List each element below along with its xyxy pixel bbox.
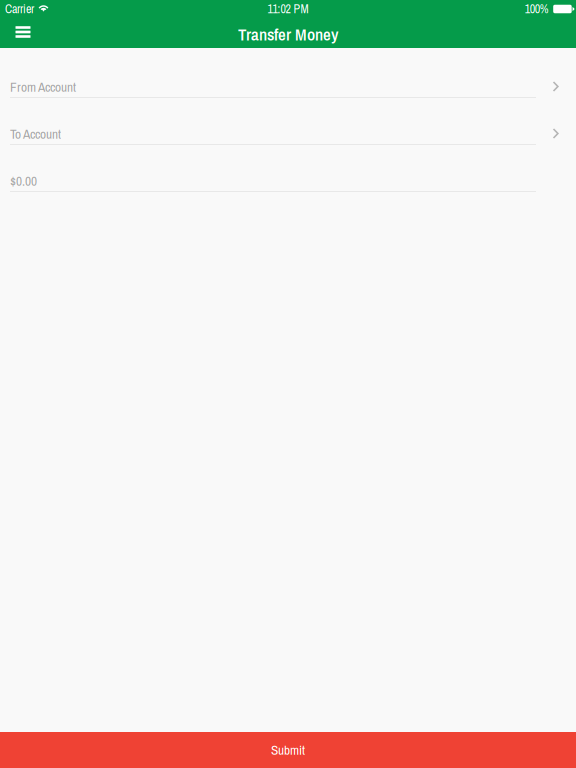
staticText: 100% [525,1,549,17]
button[interactable]: Submit [0,732,576,768]
staticText: $0.00 [10,172,37,190]
staticText: Carrier [5,1,34,17]
staticText: Transfer Money [238,23,338,46]
button[interactable]: Menu [6,20,39,48]
staticText: From Account [10,78,76,96]
staticText: Submit [271,741,305,759]
button[interactable]: To Account [0,119,576,166]
staticText: 11:02 PM [267,1,308,17]
staticText: To Account [10,125,61,143]
button[interactable]: From Account [0,72,576,119]
button[interactable]: $0.00 [0,166,576,213]
